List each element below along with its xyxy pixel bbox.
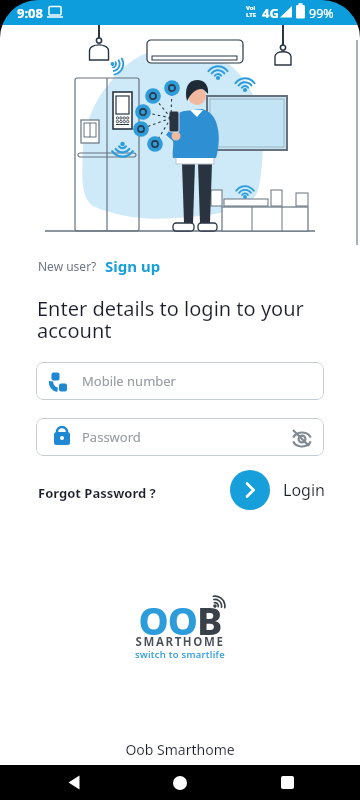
staticText: Vol LTE: [246, 4, 257, 19]
button[interactable]: Sign up: [105, 256, 161, 276]
staticText: SMARTHOME: [0, 634, 360, 650]
staticText: OOB: [0, 594, 360, 646]
staticText: Mobile number: [82, 372, 176, 390]
button[interactable]: [272, 767, 302, 798]
button[interactable]: Password: [36, 418, 324, 456]
staticText: 99%: [309, 5, 334, 22]
button[interactable]: Login: [230, 470, 325, 510]
button[interactable]: [165, 767, 195, 798]
button[interactable]: Mobile number: [36, 362, 324, 400]
staticText: Login: [283, 479, 325, 501]
button[interactable]: [59, 767, 89, 798]
staticText: Enter details to login to your account: [37, 295, 304, 344]
staticText: 4G: [262, 4, 279, 22]
staticText: switch to smartlife: [0, 648, 360, 661]
staticText: New user?: [38, 258, 97, 274]
button[interactable]: Forgot Password ?: [38, 484, 156, 502]
staticText: Oob Smarthome: [0, 740, 360, 759]
staticText: Password: [82, 428, 141, 446]
staticText: 9:08: [17, 4, 43, 22]
